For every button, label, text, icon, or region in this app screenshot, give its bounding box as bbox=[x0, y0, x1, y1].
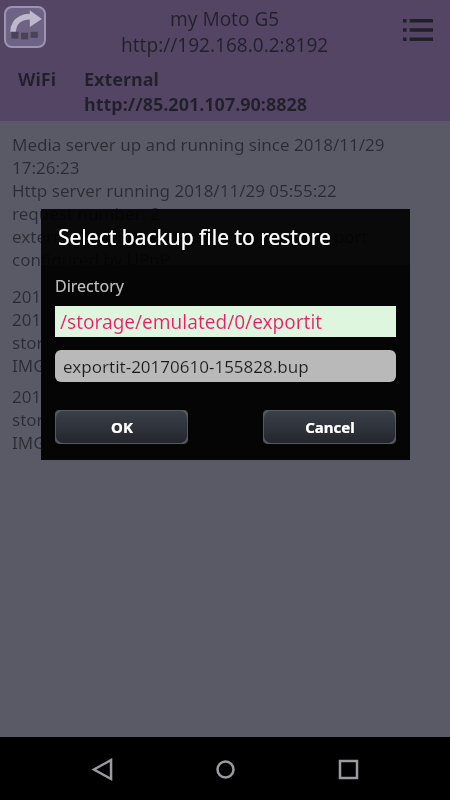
staticText: Cancel bbox=[305, 417, 355, 437]
staticText: WiFi bbox=[18, 67, 57, 92]
staticText: Http server running 2018/11/29 05:55:22 bbox=[12, 179, 337, 202]
button[interactable]: /storage/emulated/0/exportit bbox=[55, 306, 396, 337]
staticText: Select backup file to restore bbox=[58, 223, 331, 252]
button[interactable]: Menu bbox=[396, 8, 440, 52]
staticText: external ip address: ty or in the extern… bbox=[12, 225, 368, 248]
staticText: /storage/emulated/0/exportit bbox=[60, 309, 323, 335]
staticText: IMG_20181129 bbox=[12, 431, 131, 454]
staticText: Media server up and running since 2018/1… bbox=[12, 133, 385, 156]
button[interactable]: exportit-20170610-155828.bup bbox=[55, 350, 396, 382]
staticText: http://192.168.0.2:8192 bbox=[121, 32, 329, 58]
staticText: request number: 2 bbox=[12, 202, 161, 225]
button[interactable]: OK bbox=[55, 410, 188, 444]
button[interactable]: Cancel bbox=[263, 410, 396, 444]
staticText: 2018/11/29 05:55:40 bbox=[12, 385, 175, 408]
staticText: 17:26:23 bbox=[12, 156, 80, 179]
staticText: Directory bbox=[55, 275, 125, 297]
staticText: storage accessed bbox=[12, 331, 150, 354]
button[interactable]: App icon bbox=[5, 7, 45, 47]
staticText: exportit-20170610-155828.bup bbox=[63, 355, 309, 378]
staticText: IMG_20181129 bbox=[12, 354, 131, 377]
button[interactable]: Recent apps bbox=[324, 745, 372, 793]
button[interactable]: Back bbox=[78, 745, 126, 793]
staticText: 2018/11/29 05:55:22 bbox=[12, 308, 175, 331]
staticText: configured by UPnP bbox=[12, 248, 170, 271]
staticText: storage accessed bbox=[12, 408, 150, 431]
button[interactable]: Home bbox=[201, 745, 249, 793]
staticText: OK bbox=[111, 417, 133, 437]
staticText: my Moto G5 bbox=[170, 6, 280, 32]
staticText: External bbox=[84, 67, 159, 92]
staticText: 2018/11/29 05:55:22 bbox=[12, 285, 175, 308]
staticText: http://85.201.107.90:8828 bbox=[84, 92, 308, 117]
